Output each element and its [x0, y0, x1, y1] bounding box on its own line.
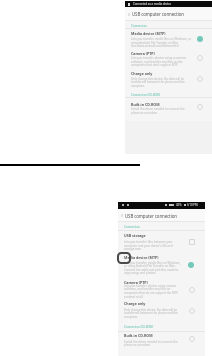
button[interactable]: Built-in CD-ROM: [125, 99, 212, 118]
staticText: protocol at all.: [124, 295, 144, 299]
staticText: Lets you transfer media files on Windows…: [124, 261, 181, 265]
staticText: Charge only: [131, 71, 153, 76]
staticText: software, and transfer any files on: [124, 287, 171, 291]
staticText: Media device (MTP): [131, 31, 166, 36]
staticText: Camera (PTP): [124, 280, 148, 285]
staticText: software, and transfer any files on the: [131, 60, 183, 64]
staticText: Lets you transfer media files on Windows…: [131, 37, 192, 41]
staticText: storage area: [124, 247, 142, 251]
button[interactable]: USB storage: [118, 232, 205, 254]
staticText: or using Android File Transfer on Mac.: [124, 264, 176, 268]
button[interactable]: Navigate up: [127, 11, 131, 17]
staticText: Only charge this device. No data will be: [124, 308, 178, 312]
staticText: Connect as: [124, 225, 140, 229]
button[interactable]: Media device (MTP): [118, 253, 205, 277]
staticText: Connect as: [131, 24, 147, 28]
staticText: Camera (PTP): [131, 51, 155, 56]
staticText: computer and your device's SD card: [124, 244, 173, 248]
button[interactable]: Media device (MTP): [125, 29, 212, 49]
staticText: Install the driver needed to connect the: [124, 340, 178, 344]
staticText: computers that don't support MTP: [131, 63, 178, 67]
staticText: Lets you transfer photos using camera: [124, 284, 177, 288]
staticText: Lets you transfer files between your: [124, 240, 173, 244]
staticText: Built-in CD-ROM: [124, 333, 153, 338]
staticText: Connect as CD-ROM: [131, 93, 160, 97]
button[interactable]: Charge only: [118, 300, 205, 321]
staticText: transferred between the phone and the: [124, 311, 178, 315]
staticText: USB storage: [124, 233, 146, 238]
staticText: phone as a modem: [124, 343, 151, 347]
button[interactable]: Camera (PTP): [118, 277, 205, 300]
button[interactable]: Charge only: [125, 69, 212, 89]
staticText: 42%: [176, 203, 182, 207]
staticText: Install the driver needed to connect the: [131, 107, 185, 111]
button[interactable]: Camera (PTP): [125, 49, 212, 69]
staticText: transferred between the phone and the: [131, 80, 185, 84]
staticText: 5:10 PM: [187, 203, 198, 207]
staticText: (see www.android.com/filetransfer): [131, 44, 179, 48]
staticText: Built-in CD-ROM: [131, 102, 160, 107]
staticText: USB computer connection: [125, 213, 177, 219]
staticText: phone as a modem: [131, 111, 158, 115]
staticText: computer.: [131, 84, 145, 88]
staticText: Charge only: [124, 301, 146, 306]
button[interactable]: Navigate up: [120, 212, 124, 218]
button[interactable]: Built-in CD-ROM: [118, 332, 205, 352]
staticText: Connected as a media device: [133, 2, 172, 6]
staticText: copy songs and photos.: [124, 271, 157, 275]
staticText: computers that do not support the MTP: [124, 291, 178, 295]
staticText: Only charge this device. No data will be: [131, 77, 185, 81]
staticText: computer.: [124, 315, 138, 319]
staticText: Lets you transfer photos using a camera: [131, 56, 186, 60]
staticText: Media device (MTP): [124, 255, 159, 260]
staticText: Connect the cable and pick this mode to: [124, 268, 179, 272]
staticText: using Android File Transfer on Mac: [131, 41, 179, 45]
staticText: Connect as CD-ROM: [124, 325, 153, 329]
staticText: USB computer connection: [132, 11, 184, 17]
